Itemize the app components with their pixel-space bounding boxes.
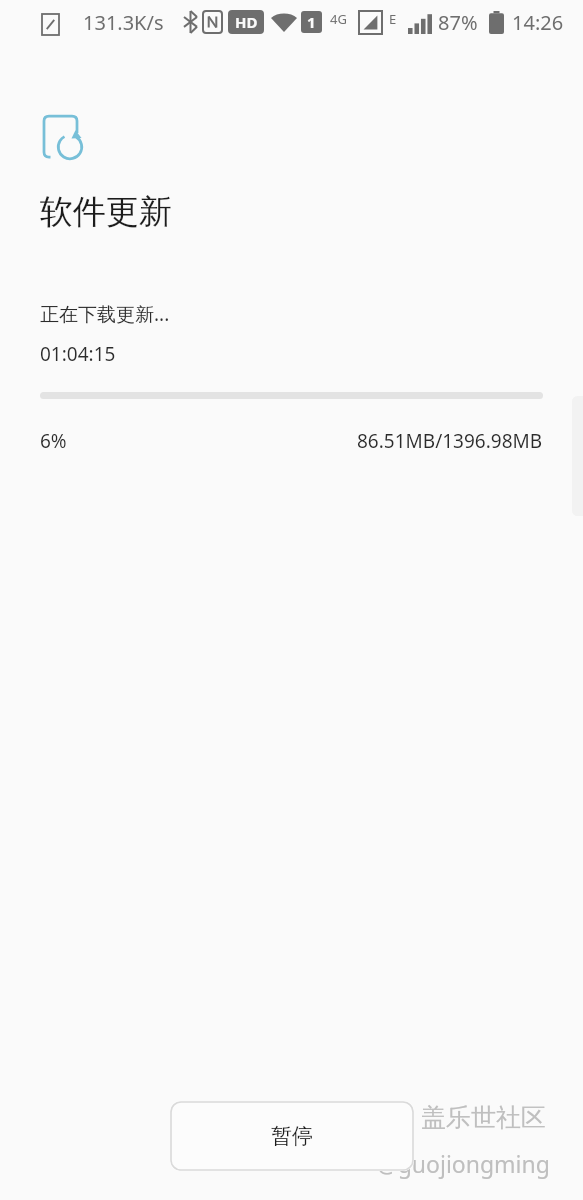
other: Software update xyxy=(41,114,91,164)
staticText: 暂停 xyxy=(271,1123,313,1149)
staticText: 4G xyxy=(330,10,347,28)
staticText: 6% xyxy=(40,428,67,454)
staticText: 14:26 xyxy=(512,9,564,36)
staticText: HD xyxy=(235,12,258,32)
staticText: 正在下载更新... xyxy=(40,301,170,327)
staticText: 131.3K/s xyxy=(83,9,164,36)
staticText: @guojiongming xyxy=(377,1148,550,1179)
staticText: 软件更新 xyxy=(40,191,172,233)
staticText: 盖乐世社区 xyxy=(421,1102,546,1133)
staticText: 87% xyxy=(438,9,478,36)
staticText: E xyxy=(389,10,397,28)
staticText: 1 xyxy=(307,12,316,32)
staticText: 86.51MB/1396.98MB xyxy=(357,428,543,454)
staticText: 01:04:15 xyxy=(40,341,116,367)
button[interactable]: 暂停 xyxy=(170,1101,414,1171)
